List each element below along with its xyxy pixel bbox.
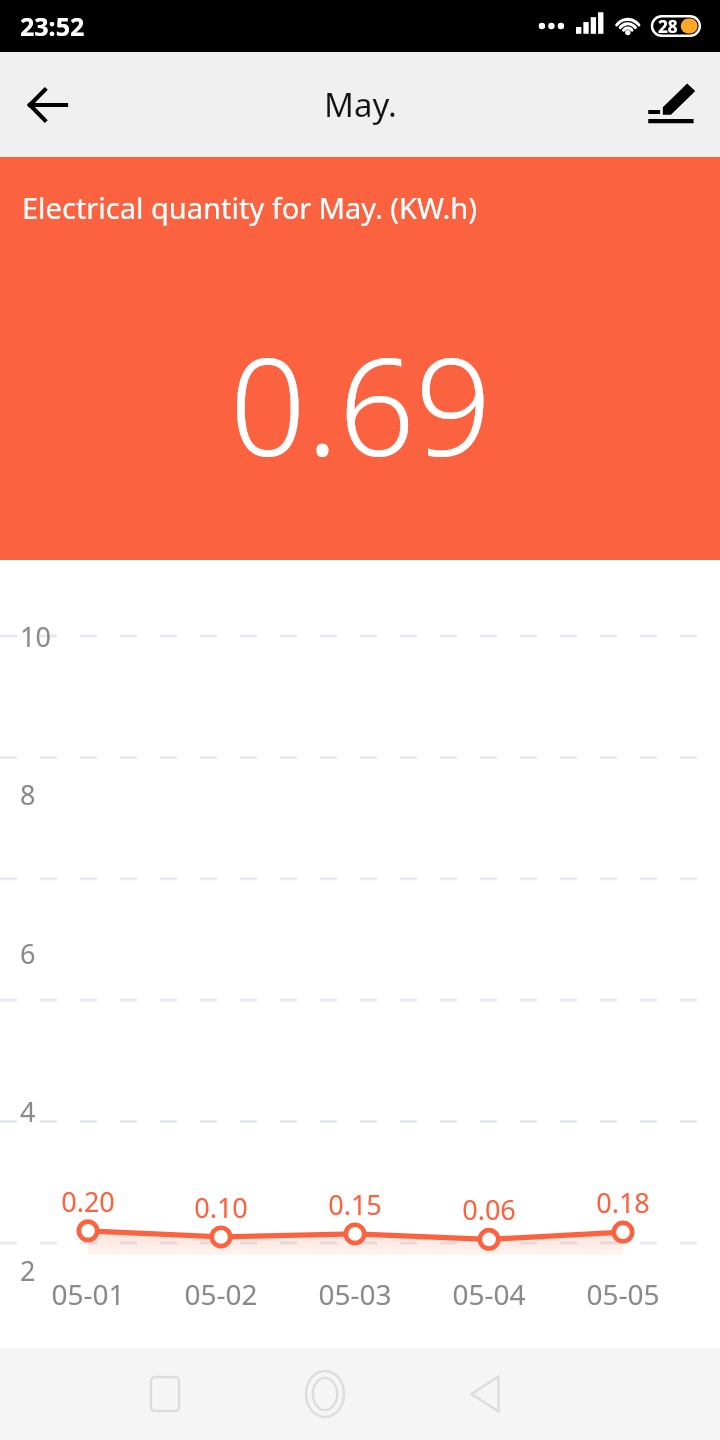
- staticText: Electrical quantity for May. (KW.h): [22, 188, 477, 227]
- staticText: May.: [324, 82, 397, 127]
- staticText: 6: [20, 935, 36, 972]
- staticText: 8: [20, 776, 36, 813]
- button[interactable]: Home: [277, 1348, 373, 1440]
- staticText: 28: [658, 15, 678, 38]
- staticText: 2: [20, 1252, 36, 1289]
- staticText: 23:52: [20, 9, 85, 43]
- staticText: 05-04: [452, 1275, 526, 1313]
- staticText: 4: [20, 1093, 36, 1130]
- staticText: 05-02: [184, 1275, 258, 1313]
- staticText: 0.10: [194, 1189, 248, 1226]
- staticText: 05-03: [318, 1275, 392, 1313]
- staticText: 0.20: [61, 1183, 115, 1220]
- button[interactable]: Recents: [117, 1348, 213, 1440]
- staticText: 0.18: [596, 1184, 650, 1221]
- staticText: 0.69: [229, 313, 492, 496]
- staticText: 0.15: [328, 1186, 382, 1223]
- button[interactable]: Back: [0, 57, 96, 153]
- staticText: 05-05: [586, 1275, 660, 1313]
- button[interactable]: Back: [437, 1348, 533, 1440]
- staticText: 0.06: [462, 1191, 516, 1228]
- button[interactable]: Edit: [624, 57, 720, 153]
- staticText: 05-01: [51, 1275, 125, 1313]
- staticText: 10: [20, 618, 51, 655]
